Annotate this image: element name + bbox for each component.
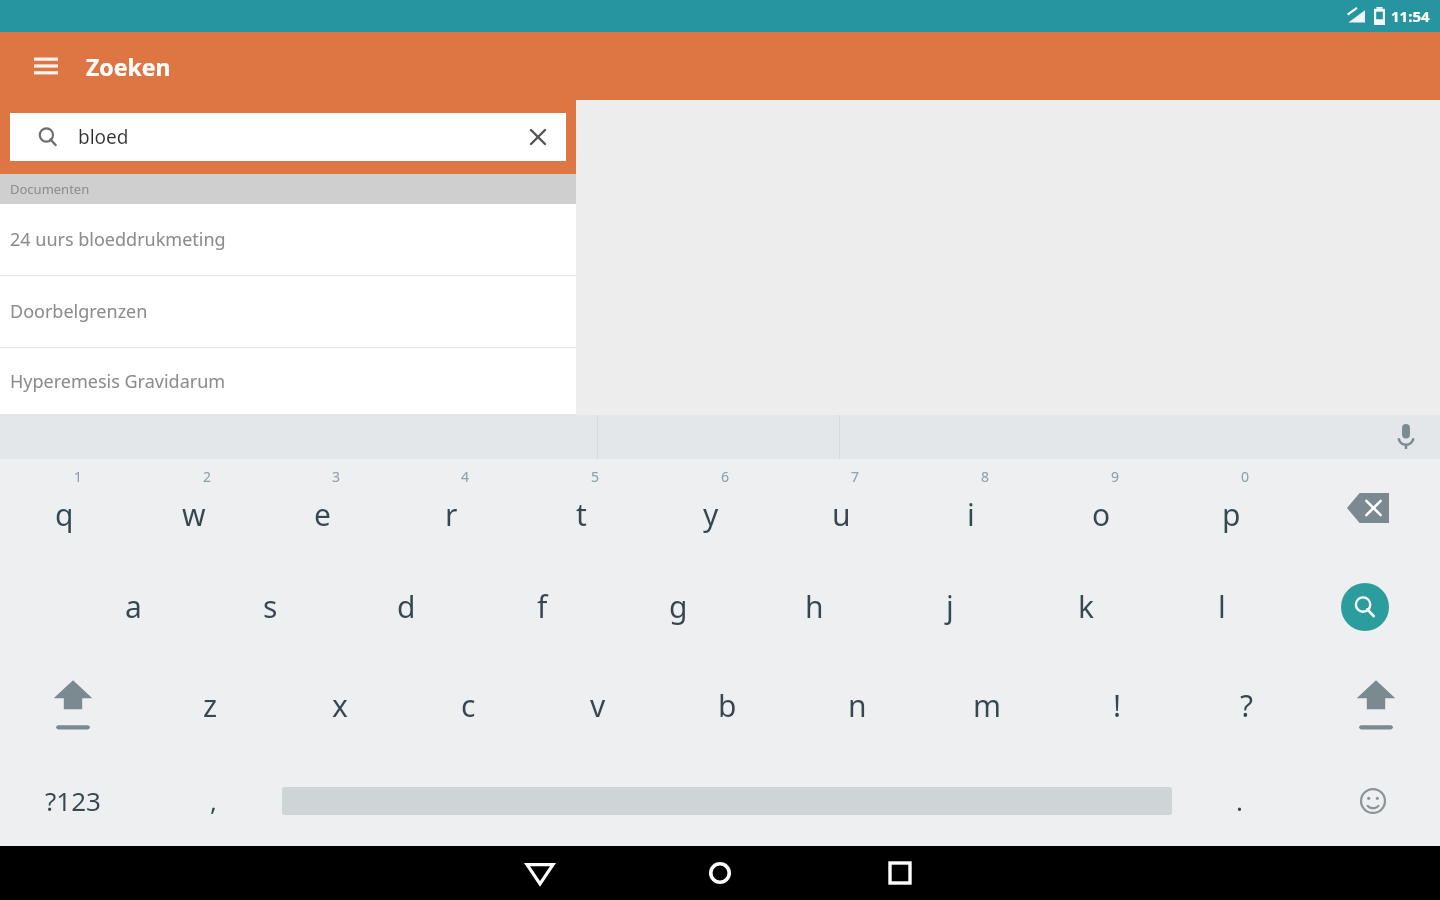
button[interactable]: Doorbelgrenzen [0, 276, 576, 348]
button[interactable]: Hyperemesis Gravidarum [0, 348, 576, 415]
staticText: , [210, 783, 217, 818]
button[interactable]: 9 [1036, 459, 1166, 557]
staticText: j [946, 586, 954, 627]
staticText: a [125, 586, 142, 627]
button[interactable]: x [275, 656, 404, 755]
staticText: Documenten [10, 180, 90, 198]
button[interactable]: 0 [1166, 459, 1296, 557]
button[interactable]: Search [1290, 557, 1440, 656]
button[interactable]: 8 [906, 459, 1036, 557]
staticText: w [182, 494, 206, 535]
staticText: d [397, 586, 416, 627]
button[interactable]: a [65, 557, 202, 656]
staticText: f [537, 586, 548, 627]
staticText: 6 [721, 467, 730, 486]
button[interactable]: 2 [129, 459, 258, 557]
button[interactable]: bloed [10, 113, 566, 161]
button[interactable]: l [1154, 557, 1290, 656]
button[interactable]: Emoji [1306, 755, 1440, 846]
staticText: 5 [591, 467, 600, 486]
staticText: i [967, 494, 975, 535]
button[interactable]: 4 [387, 459, 516, 557]
staticText: p [1222, 494, 1241, 535]
button[interactable]: c [404, 656, 533, 755]
button[interactable]: 7 [776, 459, 906, 557]
button[interactable]: b [662, 656, 792, 755]
button[interactable]: ?123 [0, 755, 145, 846]
staticText: b [718, 685, 737, 726]
button[interactable]: Home [630, 846, 810, 900]
button[interactable]: Recent apps [810, 846, 990, 900]
button[interactable]: Space [282, 755, 1172, 846]
staticText: v [590, 685, 606, 726]
staticText: bloed [78, 124, 129, 150]
button[interactable]: 5 [516, 459, 646, 557]
staticText: ?123 [45, 783, 101, 818]
staticText: n [848, 685, 867, 726]
staticText: q [55, 494, 74, 535]
button[interactable]: Back [450, 846, 630, 900]
button[interactable]: f [474, 557, 610, 656]
staticText: 4 [461, 467, 470, 486]
staticText: ? [1240, 685, 1254, 726]
button[interactable]: 3 [258, 459, 387, 557]
staticText: 2 [203, 467, 212, 486]
button[interactable]: Backspace [1296, 459, 1440, 557]
button[interactable]: , [145, 755, 282, 846]
button[interactable]: Voice input [1386, 417, 1426, 457]
button[interactable]: g [610, 557, 746, 656]
button[interactable]: n [792, 656, 922, 755]
staticText: o [1092, 494, 1111, 535]
staticText: s [263, 586, 278, 627]
button[interactable]: 1 [0, 459, 129, 557]
staticText: 0 [1241, 467, 1250, 486]
staticText: z [203, 685, 218, 726]
button[interactable]: z [146, 656, 275, 755]
staticText: 1 [74, 467, 83, 486]
staticText: 8 [981, 467, 990, 486]
button[interactable]: Shift [1312, 656, 1440, 755]
staticText: h [805, 586, 824, 627]
button[interactable]: m [922, 656, 1052, 755]
staticText: g [669, 586, 688, 627]
button[interactable]: v [533, 656, 662, 755]
button[interactable]: ? [1182, 656, 1312, 755]
button[interactable]: j [882, 557, 1018, 656]
staticText: Zoeken [86, 51, 171, 82]
button[interactable]: . [1172, 755, 1306, 846]
staticText: 11:54 [1391, 6, 1430, 26]
button[interactable]: k [1018, 557, 1154, 656]
staticText: Hyperemesis Gravidarum [10, 369, 226, 394]
staticText: 3 [332, 467, 341, 486]
staticText: ! [1113, 685, 1122, 726]
button[interactable]: ! [1052, 656, 1182, 755]
button[interactable]: h [746, 557, 882, 656]
staticText: t [576, 494, 587, 535]
button[interactable]: 6 [646, 459, 776, 557]
button[interactable]: 24 uurs bloeddrukmeting [0, 204, 576, 276]
staticText: r [445, 494, 458, 535]
button[interactable]: Open navigation menu [28, 48, 64, 84]
staticText: Doorbelgrenzen [10, 299, 148, 324]
staticText: u [832, 494, 851, 535]
staticText: . [1236, 783, 1243, 818]
staticText: 24 uurs bloeddrukmeting [10, 227, 226, 252]
staticText: k [1078, 586, 1095, 627]
staticText: e [314, 494, 331, 535]
staticText: 7 [851, 467, 860, 486]
staticText: c [461, 685, 476, 726]
button[interactable]: d [338, 557, 474, 656]
button[interactable]: Shift [0, 656, 146, 755]
staticText: y [703, 494, 719, 535]
staticText: m [973, 685, 1002, 726]
button[interactable]: Clear search [516, 115, 560, 159]
button[interactable]: s [202, 557, 338, 656]
staticText: x [332, 685, 348, 726]
staticText: 9 [1111, 467, 1120, 486]
staticText: l [1218, 586, 1226, 627]
